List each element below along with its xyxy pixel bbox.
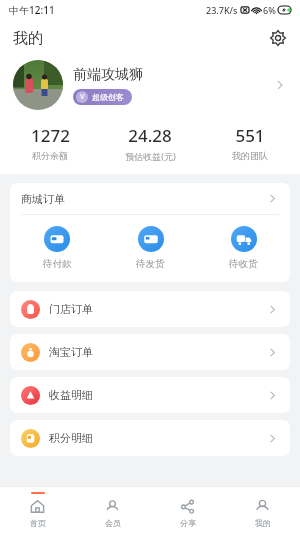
staticText: 门店订单 <box>49 302 266 316</box>
button[interactable]: 待发货 <box>104 226 197 270</box>
button[interactable]: 门店订单 <box>10 291 290 327</box>
staticText: 淘宝订单 <box>49 345 266 359</box>
button[interactable]: 首页 <box>0 487 75 533</box>
button[interactable]: 1272 <box>0 122 100 163</box>
button[interactable]: 淘宝订单 <box>10 334 290 370</box>
staticText: 商城订单 <box>21 192 266 206</box>
staticText: 积分余额 <box>32 150 68 161</box>
button[interactable]: 待收货 <box>197 226 290 270</box>
staticText: 551 <box>235 124 265 147</box>
button[interactable]: 551 <box>200 122 300 163</box>
button[interactable]: 会员 <box>75 487 150 533</box>
staticText: V <box>80 92 85 102</box>
staticText: 中午12:11 <box>9 3 55 17</box>
staticText: 待收货 <box>229 258 258 270</box>
button[interactable]: Settings <box>267 27 289 49</box>
staticText: 1272 <box>31 124 70 147</box>
staticText: 我的团队 <box>232 150 268 161</box>
staticText: 积分明细 <box>49 431 266 445</box>
button[interactable]: 待付款 <box>10 226 104 270</box>
staticText: 待付款 <box>43 258 72 270</box>
button[interactable]: 24.28 <box>100 122 200 164</box>
staticText: 待发货 <box>136 258 165 270</box>
staticText: 超级创客 <box>92 92 124 102</box>
staticText: 我的 <box>13 29 43 48</box>
button[interactable]: 分享 <box>150 487 225 533</box>
staticText: 会员 <box>105 518 121 528</box>
button[interactable]: 收益明细 <box>10 377 290 413</box>
staticText: 我的 <box>255 518 271 528</box>
button[interactable]: 积分明细 <box>10 420 290 456</box>
staticText: 23.7K/s <box>206 4 238 16</box>
button[interactable]: 前端攻城狮 <box>0 56 300 114</box>
staticText: 6% <box>263 4 276 16</box>
button[interactable]: 商城订单 <box>10 183 290 214</box>
button[interactable]: 我的 <box>225 487 300 533</box>
staticText: 24.28 <box>128 124 172 147</box>
staticText: 分享 <box>180 518 196 528</box>
staticText: 前端攻城狮 <box>73 66 143 84</box>
staticText: 收益明细 <box>49 388 266 402</box>
staticText: 预估收益(元) <box>125 150 176 162</box>
staticText: 首页 <box>30 518 46 528</box>
